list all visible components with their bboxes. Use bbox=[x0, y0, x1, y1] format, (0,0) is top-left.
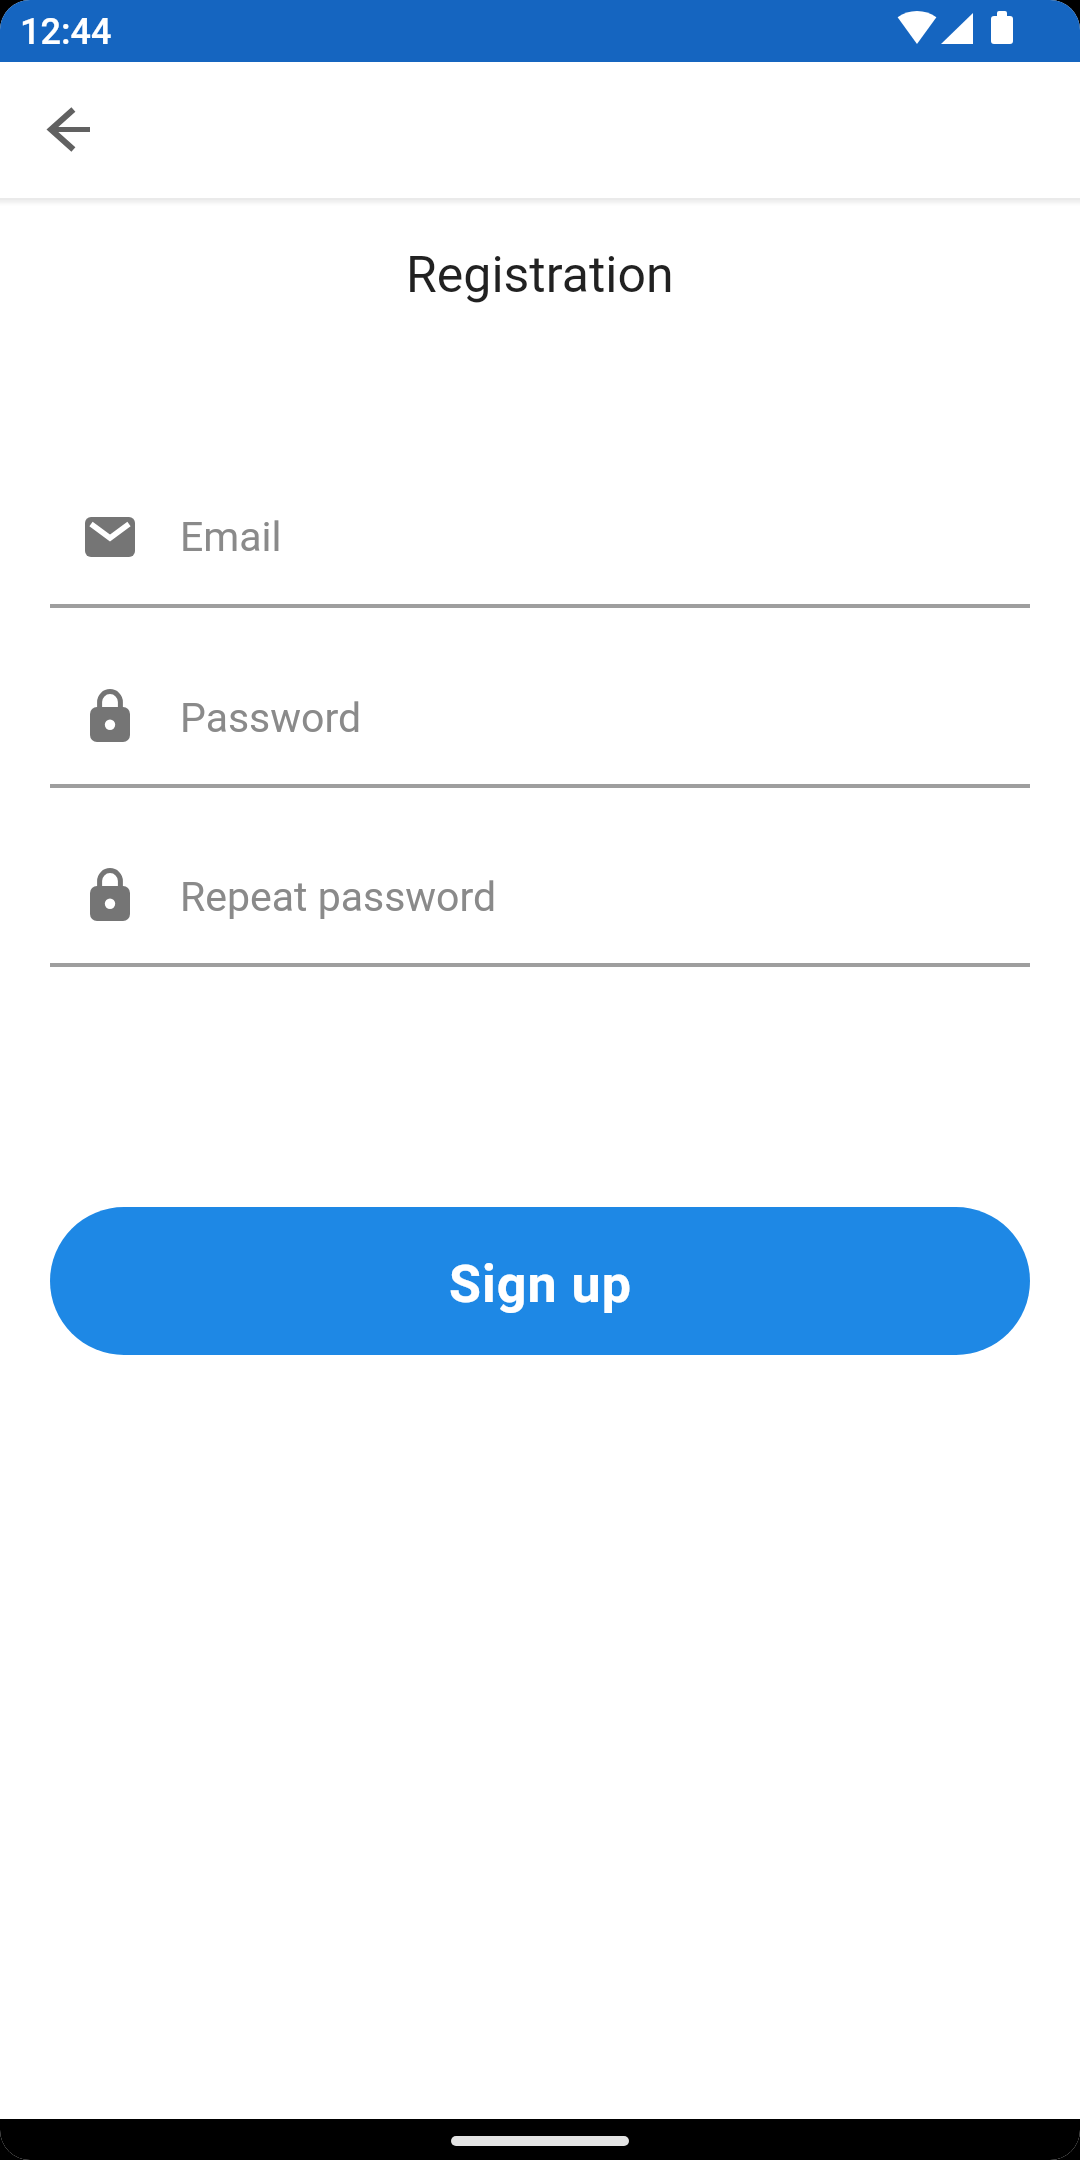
staticText: Registration bbox=[406, 246, 674, 305]
button[interactable] bbox=[34, 94, 106, 166]
staticText: Password bbox=[180, 694, 362, 742]
staticText: Email bbox=[180, 513, 282, 561]
staticText: Repeat password bbox=[180, 873, 497, 921]
staticText: 12:44 bbox=[20, 11, 112, 53]
staticText: Sign up bbox=[449, 1254, 632, 1315]
button[interactable]: Sign up bbox=[50, 1207, 1030, 1355]
